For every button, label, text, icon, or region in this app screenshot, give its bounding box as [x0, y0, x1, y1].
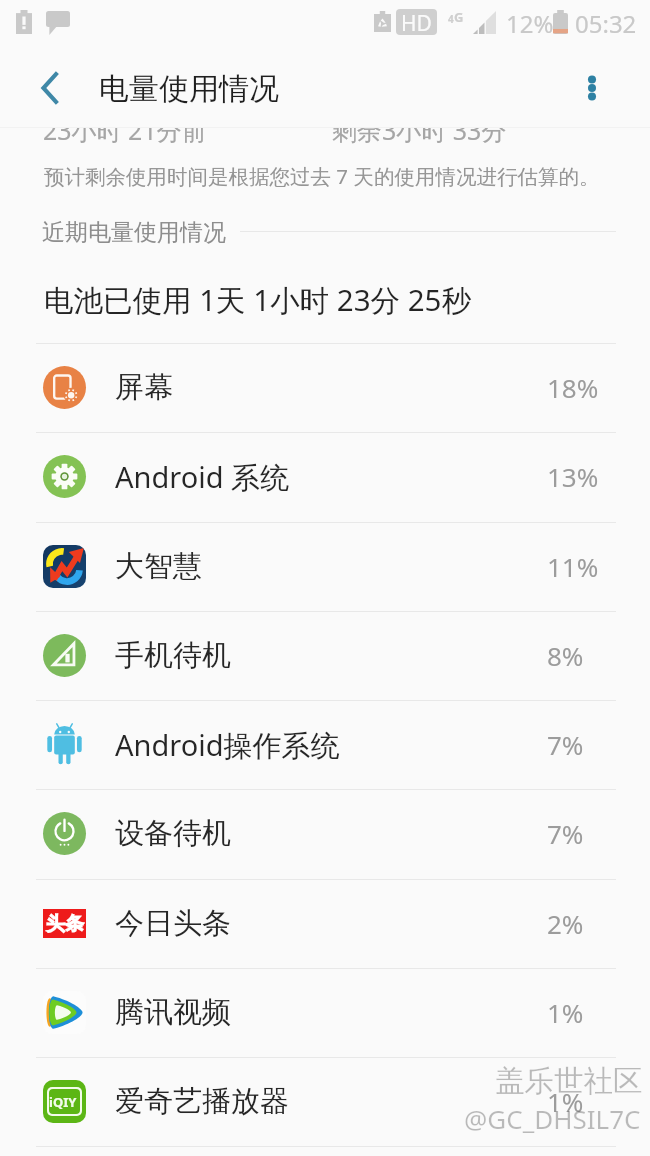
staticText: 今日头条 [115, 905, 231, 942]
staticText: 电量使用情况 [99, 70, 279, 108]
staticText: 1% [547, 1084, 584, 1119]
button[interactable]: 头条 [0, 879, 650, 968]
staticText: 设备待机 [115, 815, 231, 852]
button[interactable]: 设备待机 [0, 789, 650, 878]
button[interactable]: 屏幕 [0, 343, 650, 432]
staticText: Android操作系统 [115, 725, 340, 765]
staticText: 2% [547, 906, 584, 941]
staticText: 05:32 [575, 7, 637, 40]
button[interactable]: Android操作系统 [0, 700, 650, 789]
button[interactable]: 腾讯视频 [0, 968, 650, 1057]
staticText: 13% [547, 459, 599, 494]
staticText: 18% [547, 370, 599, 405]
button[interactable]: Android 系统 [0, 432, 650, 521]
staticText: 近期电量使用情况 [42, 218, 226, 247]
button[interactable]: More options [568, 64, 616, 112]
staticText: 23小时 21分前 [43, 113, 207, 147]
button[interactable]: iQIYI [0, 1057, 650, 1146]
staticText: 剩余3小时 33分 [332, 113, 507, 147]
staticText: 1% [547, 995, 584, 1030]
button[interactable]: 手机待机 [0, 611, 650, 700]
staticText: 7% [547, 816, 584, 851]
button[interactable]: 大智慧 [0, 522, 650, 611]
staticText: 盖乐世社区 [495, 1063, 643, 1100]
staticText: 腾讯视频 [115, 994, 231, 1031]
staticText: 预计剩余使用时间是根据您过去 7 天的使用情况进行估算的。 [44, 162, 600, 190]
button[interactable]: Back [26, 64, 74, 112]
staticText: 8% [547, 638, 584, 673]
staticText: 大智慧 [115, 548, 202, 585]
staticText: 12% [506, 7, 554, 40]
staticText: 7% [547, 727, 584, 762]
staticText: HD [401, 9, 432, 35]
staticText: 头条 [46, 912, 84, 936]
staticText: 电池已使用 1天 1小时 23分 25秒 [44, 279, 471, 319]
staticText: iQIYI [49, 1093, 80, 1111]
staticText: 爱奇艺播放器 [115, 1083, 289, 1120]
staticText: Android 系统 [115, 457, 290, 497]
staticText: @GC_DHSIL7C [464, 1101, 641, 1136]
staticText: 手机待机 [115, 637, 231, 674]
staticText: 4 [448, 12, 454, 26]
staticText: 屏幕 [115, 369, 173, 406]
staticText: 11% [547, 549, 599, 584]
staticText: G [454, 8, 464, 26]
